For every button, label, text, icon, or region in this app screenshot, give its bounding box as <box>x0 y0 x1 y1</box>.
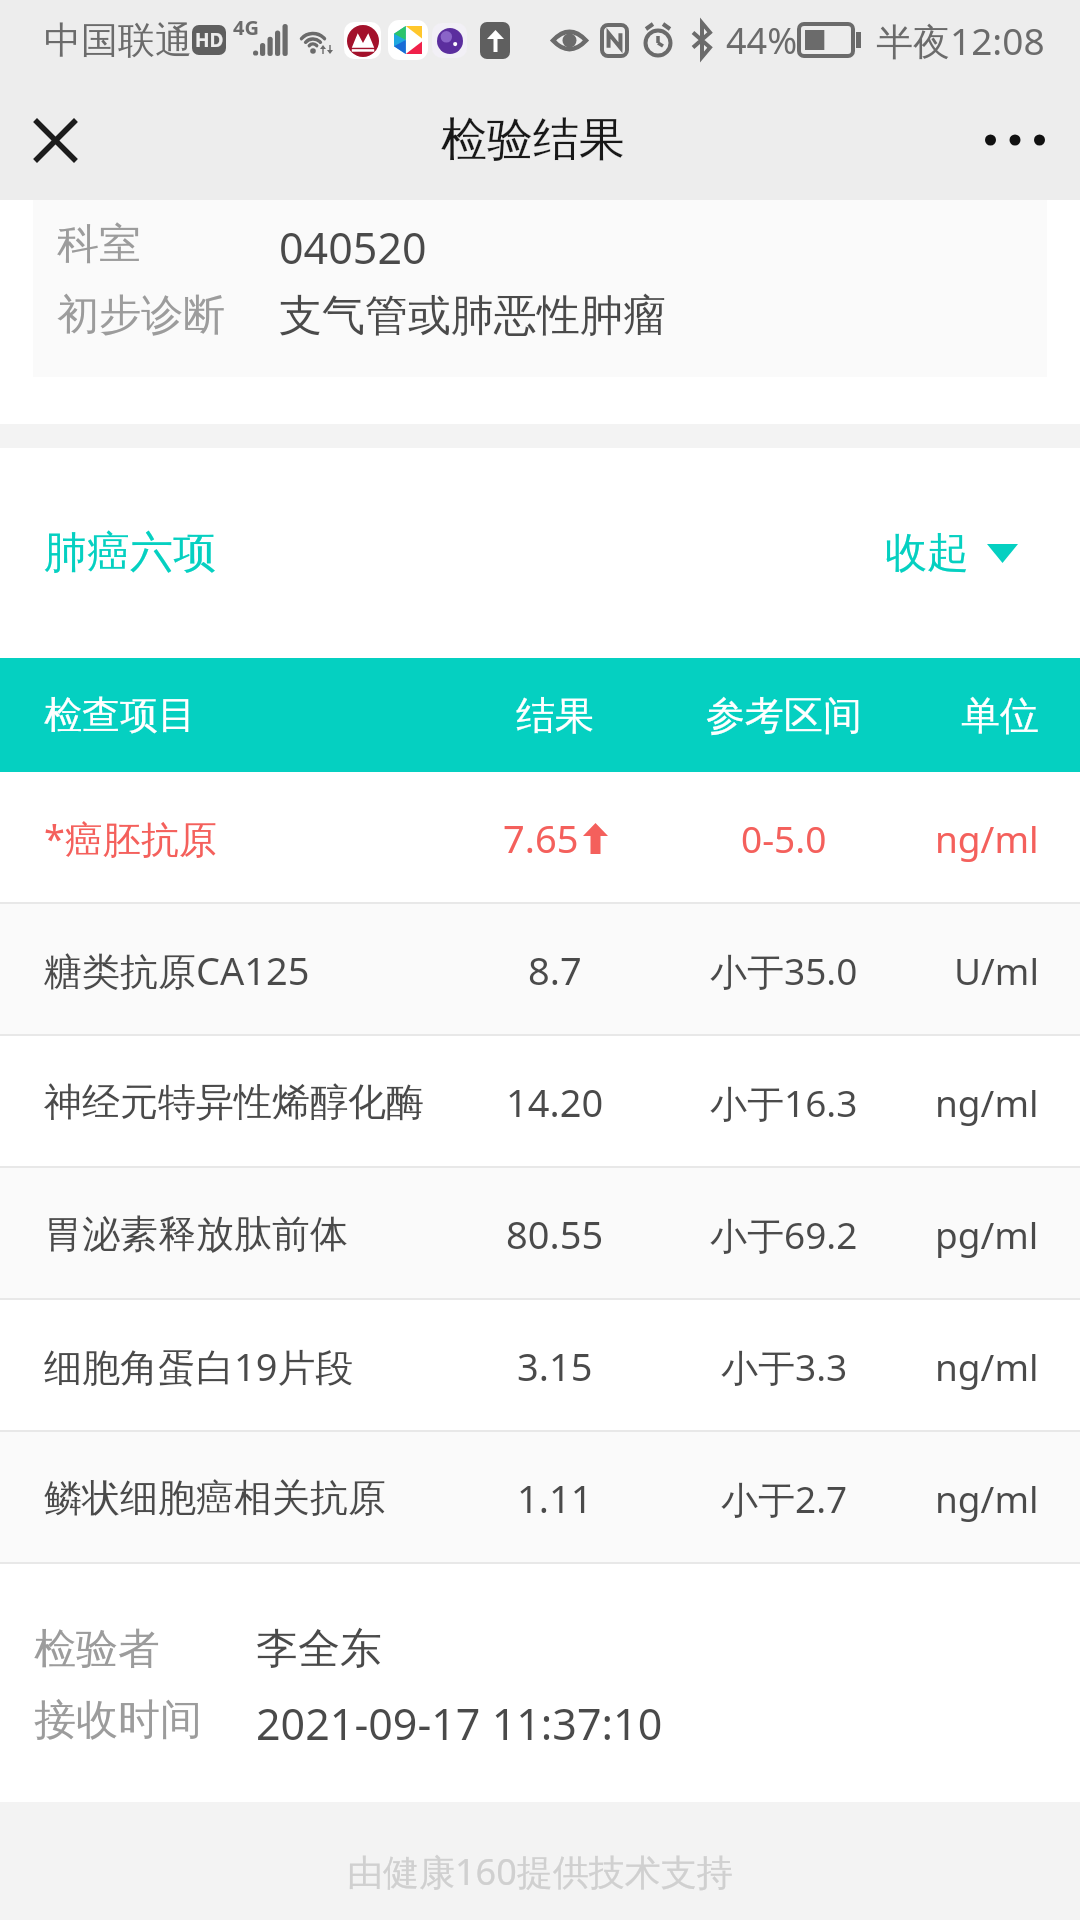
staticText: 半夜12:08 <box>876 15 1045 66</box>
staticText: 检验结果 <box>441 111 625 169</box>
staticText: 1.11 <box>517 1472 593 1524</box>
staticText: 收起 <box>885 527 969 580</box>
staticText: ng/ml <box>935 813 1039 863</box>
staticText: 初步诊断 <box>57 289 225 342</box>
staticText: 胃泌素释放肽前体 <box>44 1210 348 1258</box>
staticText: 李全东 <box>256 1623 382 1676</box>
button[interactable]: 肺癌六项 <box>0 448 1080 658</box>
button[interactable]: More options <box>950 80 1080 200</box>
staticText: 中国联通 <box>44 17 192 64</box>
button[interactable]: 鳞状细胞癌相关抗原 <box>0 1432 1080 1564</box>
staticText: 糖类抗原CA125 <box>44 944 310 996</box>
staticText: 小于69.2 <box>710 1209 858 1260</box>
button[interactable]: 神经元特异性烯醇化酶 <box>0 1036 1080 1168</box>
staticText: pg/ml <box>935 1209 1039 1259</box>
staticText: *癌胚抗原 <box>44 812 217 864</box>
staticText: 神经元特异性烯醇化酶 <box>44 1078 424 1126</box>
staticText: 鳞状细胞癌相关抗原 <box>44 1474 386 1522</box>
button[interactable]: *癌胚抗原 <box>0 772 1080 904</box>
staticText: 80.55 <box>506 1208 604 1260</box>
staticText: 肺癌六项 <box>44 526 216 580</box>
staticText: 7.65 <box>503 812 579 864</box>
staticText: U/ml <box>954 945 1039 995</box>
staticText: HD <box>195 27 224 53</box>
button[interactable]: 收起 <box>885 493 1018 613</box>
staticText: 单位 <box>961 691 1039 740</box>
staticText: 14.20 <box>506 1076 604 1128</box>
staticText: 科室 <box>57 218 141 271</box>
button[interactable]: 糖类抗原CA125 <box>0 904 1080 1036</box>
button[interactable]: 胃泌素释放肽前体 <box>0 1168 1080 1300</box>
button[interactable]: 细胞角蛋白19片段 <box>0 1300 1080 1432</box>
staticText: 接收时间 <box>34 1694 202 1747</box>
staticText: 4G <box>233 14 259 41</box>
staticText: 检验者 <box>34 1623 160 1676</box>
staticText: ng/ml <box>935 1077 1039 1127</box>
staticText: ng/ml <box>935 1473 1039 1523</box>
staticText: 3.15 <box>517 1340 593 1392</box>
staticText: 8.7 <box>528 944 582 996</box>
staticText: 小于16.3 <box>710 1077 858 1128</box>
staticText: 小于35.0 <box>710 945 858 996</box>
staticText: 44% <box>726 16 798 65</box>
staticText: 由健康160提供技术支持 <box>347 1847 733 1896</box>
staticText: 0-5.0 <box>741 813 827 863</box>
staticText: 2021-09-17 11:37:10 <box>256 1694 663 1753</box>
staticText: 结果 <box>516 691 594 740</box>
staticText: 检查项目 <box>44 691 196 739</box>
staticText: 细胞角蛋白19片段 <box>44 1340 354 1392</box>
staticText: 小于3.3 <box>721 1341 848 1392</box>
staticText: 040520 <box>279 218 427 277</box>
button[interactable]: Close <box>0 80 110 200</box>
staticText: 小于2.7 <box>721 1473 848 1524</box>
staticText: 参考区间 <box>706 691 862 740</box>
staticText: ng/ml <box>935 1341 1039 1391</box>
staticText: 支气管或肺恶性肿瘤 <box>279 289 666 343</box>
